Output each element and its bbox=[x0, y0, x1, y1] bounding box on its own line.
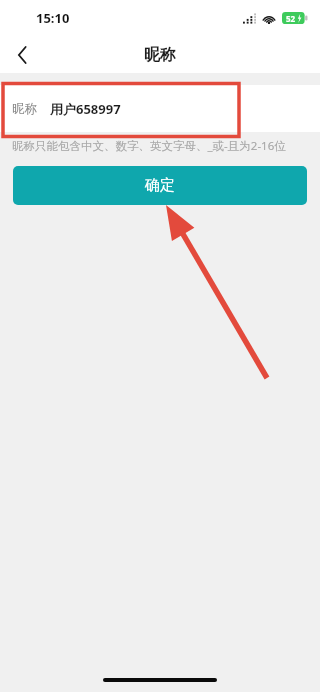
staticText: 15:10 bbox=[36, 9, 70, 27]
button[interactable]: 昵称 bbox=[0, 85, 320, 132]
button[interactable]: Back bbox=[0, 36, 44, 73]
staticText: 昵称只能包含中文、数字、英文字母、_或-且为2-16位 bbox=[12, 138, 312, 154]
button[interactable]: 确定 bbox=[13, 166, 307, 205]
staticText: 昵称 bbox=[12, 101, 37, 117]
staticText: 昵称 bbox=[144, 45, 176, 65]
staticText: 用户658997 bbox=[50, 100, 121, 118]
staticText: 52 bbox=[286, 13, 296, 24]
staticText: 确定 bbox=[145, 176, 175, 195]
